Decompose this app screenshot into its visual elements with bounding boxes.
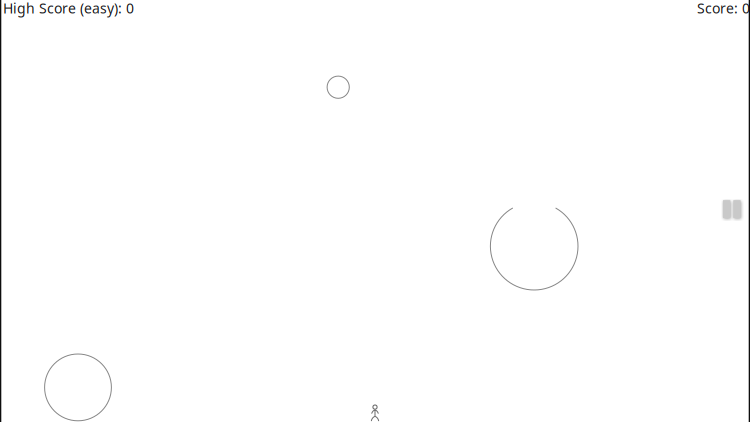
button[interactable]: Pause — [723, 200, 741, 218]
staticText: High Score (easy): 0 — [3, 0, 134, 18]
staticText: Score: 0 — [697, 0, 750, 18]
